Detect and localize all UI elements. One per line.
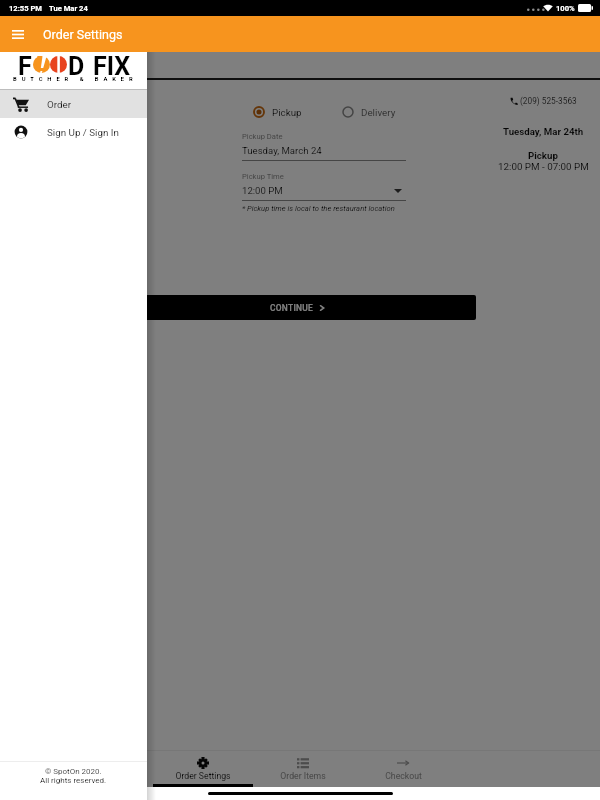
staticText: Order Settings bbox=[175, 771, 231, 781]
staticText: Order Items bbox=[280, 771, 326, 781]
staticText: Tue Mar 24 bbox=[49, 4, 88, 13]
staticText: CONTINUE bbox=[270, 303, 314, 313]
staticText: 12:00 PM - 07:00 PM bbox=[498, 161, 589, 172]
staticText: 12:55 PM bbox=[9, 4, 42, 13]
staticText: B U T C H E R & B A K E R bbox=[13, 76, 135, 83]
button[interactable]: Sign Up / Sign In bbox=[0, 118, 147, 146]
staticText: Order Settings bbox=[43, 27, 123, 42]
button[interactable]: Open navigation drawer bbox=[0, 16, 36, 52]
staticText: Order bbox=[47, 99, 72, 110]
staticText: (209) 525-3563 bbox=[520, 96, 577, 106]
staticText: Pickup Date bbox=[242, 132, 283, 141]
button[interactable]: Order Items bbox=[253, 751, 353, 787]
staticText: Tuesday, March 24 bbox=[242, 145, 322, 156]
button[interactable]: 12:00 PM bbox=[242, 185, 406, 196]
staticText: * Pickup time is local to the restaurant… bbox=[242, 204, 395, 213]
staticText: All rights reserved. bbox=[40, 776, 107, 785]
staticText: 12:00 PM bbox=[242, 185, 283, 196]
button[interactable]: Order Settings bbox=[153, 751, 253, 787]
staticText: Delivery bbox=[361, 107, 396, 118]
staticText: FIX bbox=[93, 52, 131, 76]
staticText: Pickup Time bbox=[242, 172, 284, 181]
staticText: Checkout bbox=[385, 771, 422, 781]
button[interactable]: Order bbox=[0, 90, 147, 118]
button[interactable]: Pickup bbox=[253, 106, 302, 118]
staticText: F bbox=[18, 52, 32, 76]
staticText: D bbox=[68, 52, 85, 76]
staticText: Tuesday, Mar 24th bbox=[503, 126, 584, 137]
staticText: Pickup bbox=[528, 150, 558, 161]
staticText: Pickup bbox=[272, 107, 302, 118]
staticText: © SpotOn 2020. bbox=[45, 767, 102, 776]
button[interactable]: Checkout bbox=[353, 751, 453, 787]
staticText: Sign Up / Sign In bbox=[47, 127, 119, 138]
button[interactable]: CONTINUE bbox=[119, 295, 476, 320]
staticText: 100% bbox=[556, 4, 575, 13]
button[interactable]: Delivery bbox=[342, 106, 396, 118]
